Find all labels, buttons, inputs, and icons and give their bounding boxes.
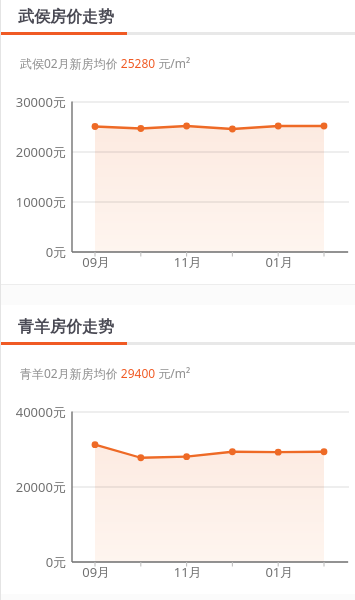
button[interactable]: 武侯房价走势 [0,0,355,32]
staticText: 武侯房价走势 [18,7,114,27]
button[interactable]: 青羊房价走势 [0,305,355,342]
staticText: 武侯02月新房均价 25280 元/m² [20,55,191,71]
staticText: 青羊房价走势 [18,317,114,337]
staticText: 青羊02月新房均价 29400 元/m² [20,365,191,381]
